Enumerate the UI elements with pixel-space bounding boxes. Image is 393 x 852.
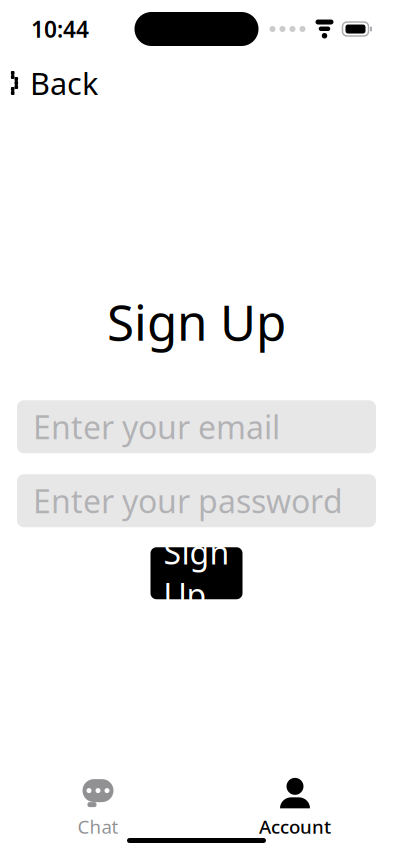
button[interactable]: Account: [230, 780, 360, 838]
staticText: Back: [30, 63, 98, 103]
staticText: 10:44: [31, 14, 89, 44]
staticText: Sign Up: [163, 531, 229, 616]
button[interactable]: Enter your password: [17, 474, 376, 527]
staticText: Chat: [77, 814, 118, 839]
button[interactable]: Back: [0, 53, 107, 113]
button[interactable]: Chat: [33, 780, 163, 838]
button[interactable]: Enter your email: [17, 400, 376, 453]
staticText: Enter your email: [33, 405, 280, 448]
button[interactable]: Sign Up: [150, 547, 242, 599]
staticText: Enter your password: [33, 479, 343, 522]
staticText: Sign Up: [107, 289, 286, 354]
staticText: Account: [259, 814, 331, 839]
